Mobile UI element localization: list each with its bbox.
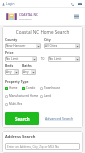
button[interactable]: Email bbox=[77, 1, 83, 7]
button[interactable]: Any bbox=[22, 69, 36, 75]
staticText: Beds bbox=[5, 63, 14, 68]
staticText: PROPERTIES bbox=[19, 18, 32, 21]
staticText: Any bbox=[23, 70, 31, 74]
staticText: Property Type bbox=[5, 79, 29, 84]
button[interactable]: New Hanover bbox=[5, 43, 41, 49]
staticText: Address Search bbox=[5, 134, 36, 139]
staticText: All Cities bbox=[45, 44, 75, 48]
staticText: Enter an Address, City, Zip or MLS No bbox=[7, 145, 60, 149]
staticText: Any bbox=[6, 70, 14, 74]
staticText: Multi-Res bbox=[9, 102, 23, 106]
staticText: City bbox=[44, 37, 51, 42]
staticText: Search bbox=[15, 116, 30, 122]
button[interactable]: Advanced Search bbox=[39, 116, 80, 121]
staticText: Home bbox=[9, 86, 18, 90]
button[interactable]: Home bbox=[5, 86, 22, 90]
button[interactable]: Manufactured Home bbox=[5, 94, 40, 98]
button[interactable]: Land bbox=[40, 94, 51, 98]
button[interactable]: Any bbox=[5, 69, 19, 75]
staticText: Coastal NC Home Search bbox=[5, 29, 80, 35]
staticText: Condo bbox=[26, 86, 36, 90]
staticText: No Limit bbox=[49, 57, 75, 61]
button[interactable]: No Limit bbox=[5, 56, 37, 62]
button[interactable]: Login bbox=[2, 2, 15, 6]
staticText: Townhouse bbox=[44, 86, 61, 90]
button[interactable]: Enter an Address, City, Zip or MLS No bbox=[5, 143, 80, 150]
button[interactable]: All Cities bbox=[44, 43, 80, 49]
staticText: Manufactured Home bbox=[9, 94, 39, 98]
staticText: TO bbox=[37, 57, 48, 61]
button[interactable]: No Limit bbox=[48, 56, 80, 62]
button[interactable]: Call bbox=[69, 1, 75, 7]
button[interactable]: Multi-Res bbox=[5, 102, 23, 106]
button[interactable]: Search bbox=[5, 112, 39, 125]
staticText: Baths bbox=[22, 63, 32, 68]
staticText: No Limit bbox=[6, 57, 32, 61]
staticText: Login bbox=[6, 2, 15, 6]
staticText: New Hanover bbox=[6, 44, 36, 48]
button[interactable]: Townhouse bbox=[40, 86, 61, 90]
staticText: COASTAL NC bbox=[19, 13, 38, 17]
staticText: Price bbox=[5, 50, 14, 55]
button[interactable]: Menu bbox=[73, 13, 80, 20]
staticText: Land bbox=[44, 94, 51, 98]
staticText: County bbox=[5, 37, 18, 42]
button[interactable]: Condo bbox=[22, 86, 40, 90]
staticText: Advanced Search bbox=[45, 116, 74, 121]
